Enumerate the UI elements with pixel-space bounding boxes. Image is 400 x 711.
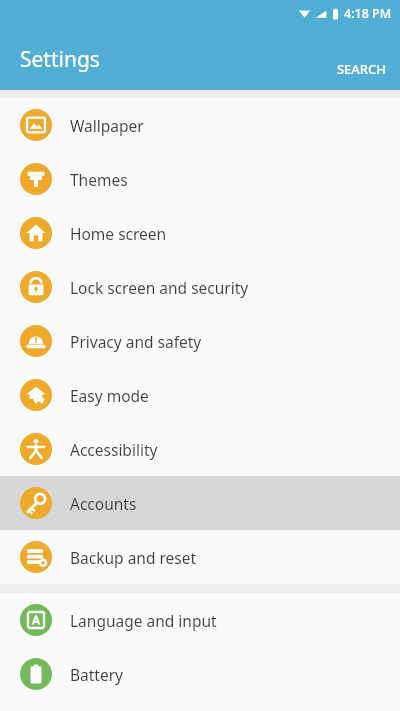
staticText: 4:18 PM bbox=[344, 5, 392, 22]
staticText: Easy mode bbox=[70, 385, 149, 406]
button[interactable]: Language and input bbox=[0, 593, 400, 647]
staticText: Settings bbox=[20, 45, 100, 74]
staticText: Privacy and safety bbox=[70, 331, 202, 352]
staticText: Themes bbox=[70, 169, 128, 190]
button[interactable]: Accessibility bbox=[0, 422, 400, 476]
staticText: SEARCH bbox=[336, 60, 386, 78]
button[interactable]: Lock screen and security bbox=[0, 260, 400, 314]
staticText: Battery bbox=[70, 664, 124, 685]
button[interactable]: Wallpaper bbox=[0, 98, 400, 152]
staticText: Language and input bbox=[70, 610, 217, 631]
staticText: Backup and reset bbox=[70, 547, 197, 568]
button[interactable]: SEARCH bbox=[322, 50, 400, 90]
button[interactable]: Battery bbox=[0, 647, 400, 701]
button[interactable]: Easy mode bbox=[0, 368, 400, 422]
staticText: Accounts bbox=[70, 493, 137, 514]
button[interactable]: Privacy and safety bbox=[0, 314, 400, 368]
button[interactable]: Accounts bbox=[0, 476, 400, 530]
button[interactable]: Home screen bbox=[0, 206, 400, 260]
staticText: Accessibility bbox=[70, 439, 158, 460]
button[interactable]: Backup and reset bbox=[0, 530, 400, 584]
staticText: Home screen bbox=[70, 223, 167, 244]
staticText: Lock screen and security bbox=[70, 277, 249, 298]
staticText: Wallpaper bbox=[70, 115, 144, 136]
button[interactable]: Themes bbox=[0, 152, 400, 206]
